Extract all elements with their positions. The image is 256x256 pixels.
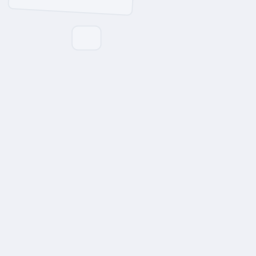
button[interactable]: Action	[72, 26, 101, 50]
